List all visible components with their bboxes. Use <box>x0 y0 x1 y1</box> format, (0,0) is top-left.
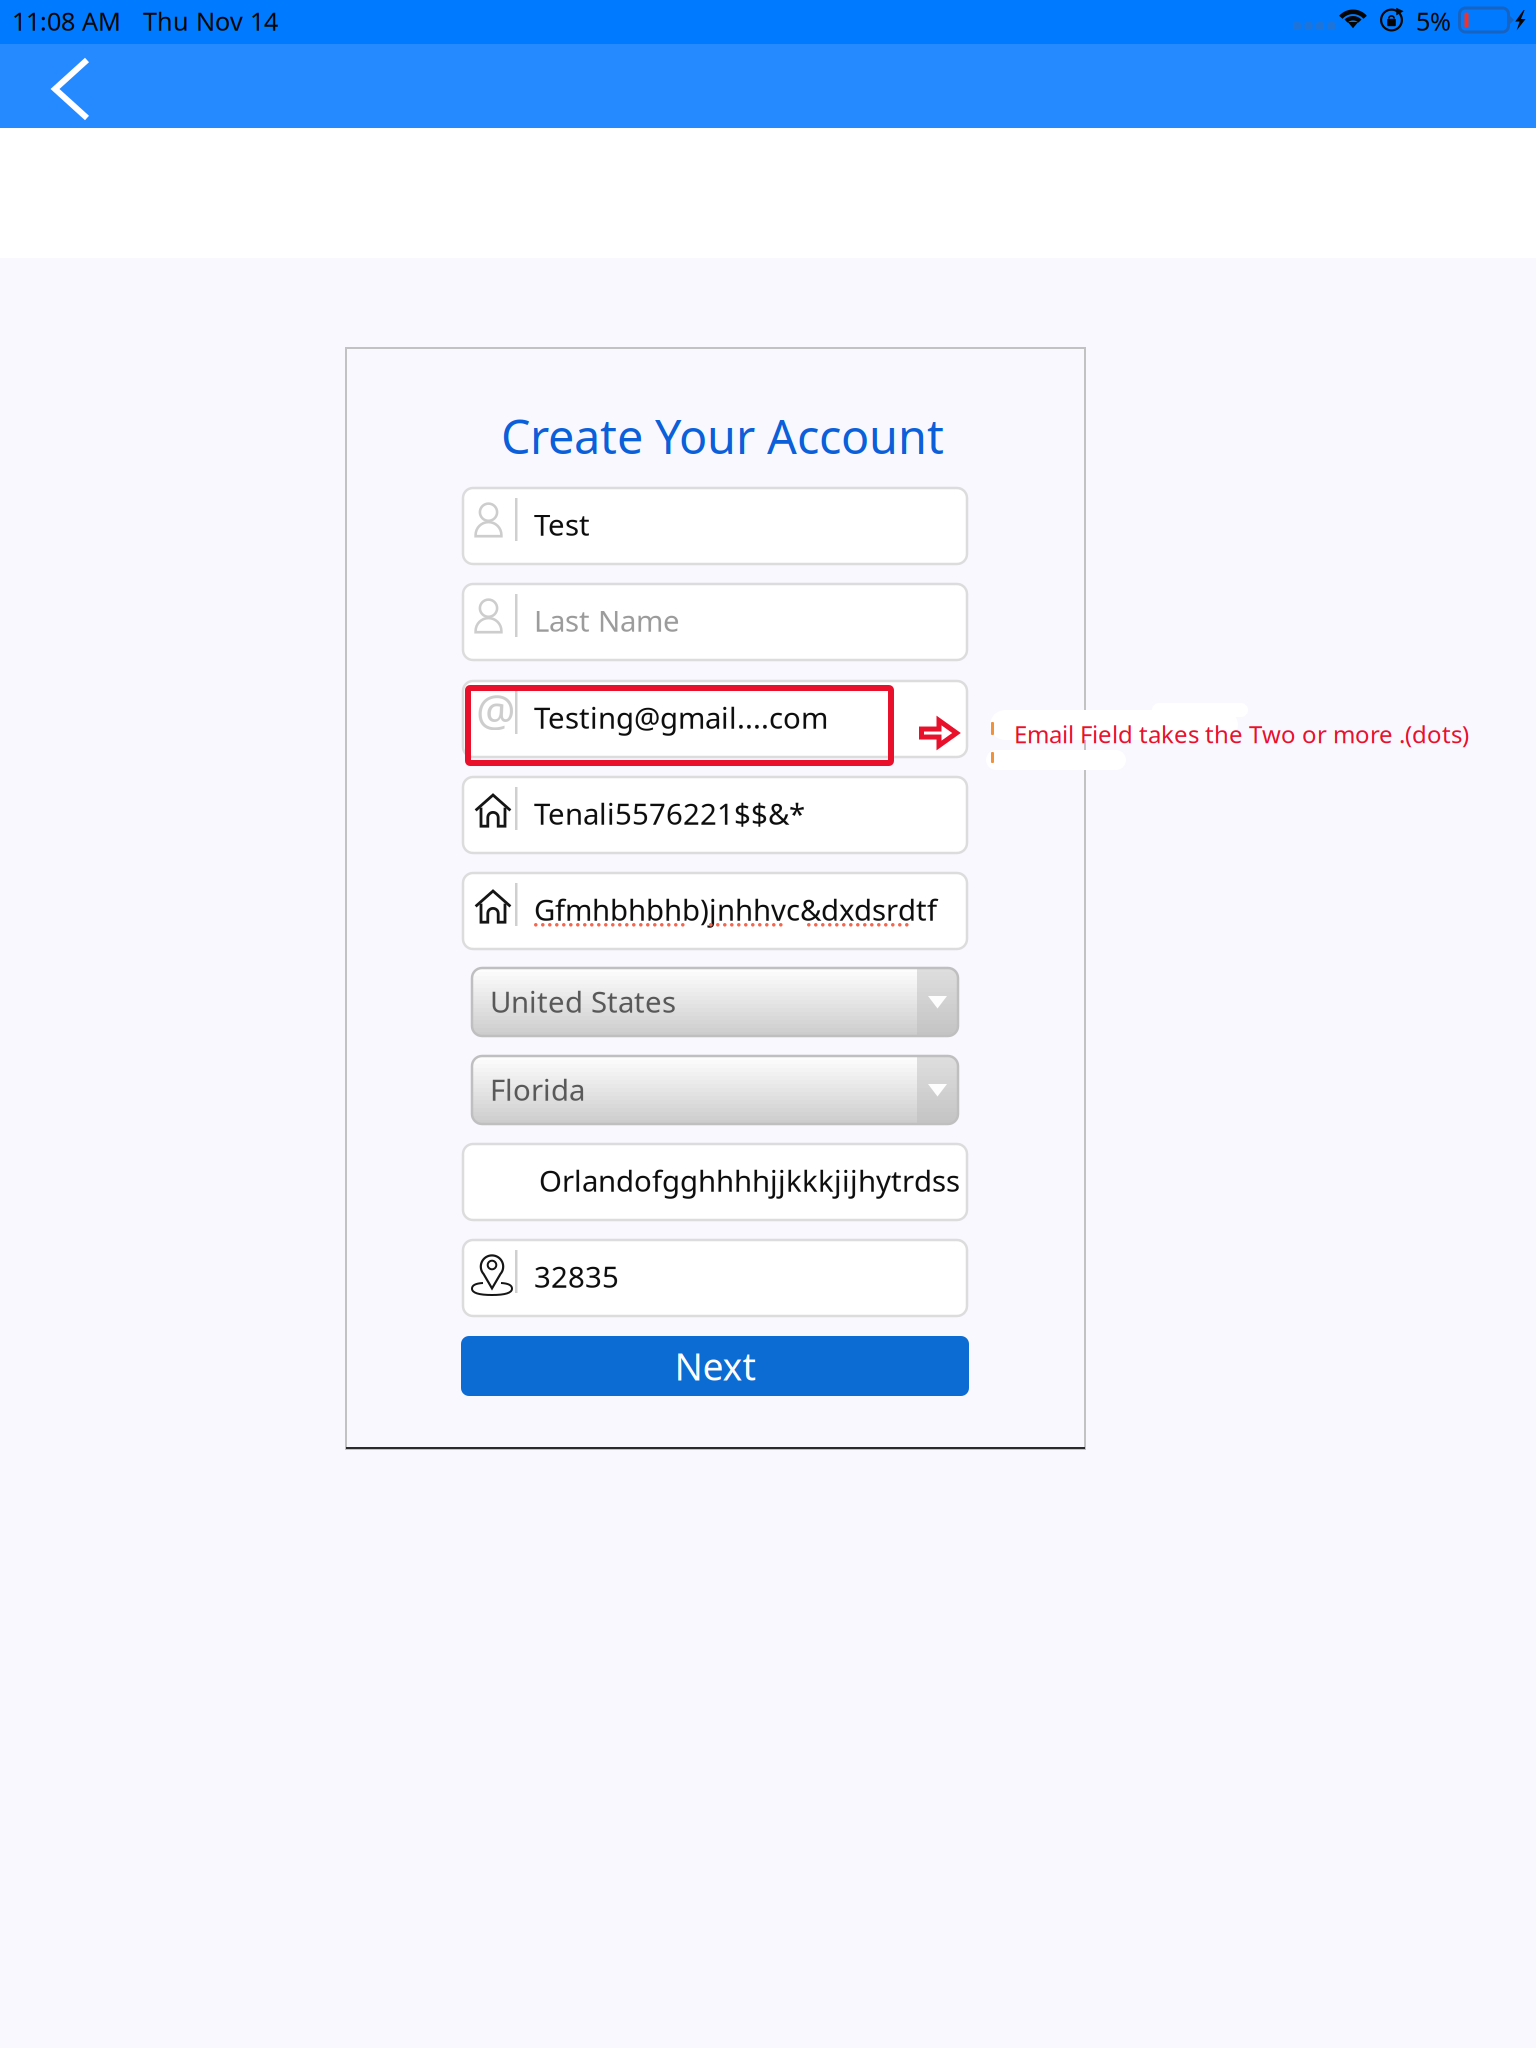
button[interactable]: @ <box>463 681 967 757</box>
button[interactable]: Next <box>461 1336 969 1396</box>
staticText: Test <box>534 505 590 544</box>
staticText: Testing@gmail....com <box>534 698 828 737</box>
staticText: Gfmhbhbhb)jnhhvc&dxdsrdtf <box>534 890 937 929</box>
button[interactable]: Gfmhbhbhb)jnhhvc&dxdsrdtf <box>463 873 967 949</box>
button[interactable]: Back <box>0 44 127 128</box>
staticText: Tenali5576221$$&* <box>534 794 805 833</box>
button[interactable]: Last Name <box>463 584 967 660</box>
staticText: 32835 <box>534 1257 619 1296</box>
staticText: 5% <box>1416 4 1451 38</box>
button[interactable]: United States <box>472 968 958 1036</box>
button[interactable]: Florida <box>472 1056 958 1124</box>
staticText: Create Your Account <box>501 405 944 467</box>
button[interactable]: Tenali5576221$$&* <box>463 777 967 853</box>
staticText: Last Name <box>534 601 680 640</box>
button[interactable]: Test <box>463 488 967 564</box>
staticText: Thu Nov 14 <box>143 4 278 38</box>
staticText: 11:08 AM <box>12 4 121 38</box>
staticText: Email Field takes the Two or more .(dots… <box>1014 718 1469 750</box>
staticText: Florida <box>490 1070 585 1109</box>
staticText: United States <box>490 982 676 1021</box>
staticText: @ <box>476 680 516 738</box>
staticText: Orlandofgghhhhjjkkkjijhytrdss <box>539 1161 960 1200</box>
staticText: Next <box>674 1341 755 1391</box>
button[interactable]: Orlandofgghhhhjjkkkjijhytrdss <box>463 1144 967 1220</box>
button[interactable]: 32835 <box>463 1240 967 1316</box>
